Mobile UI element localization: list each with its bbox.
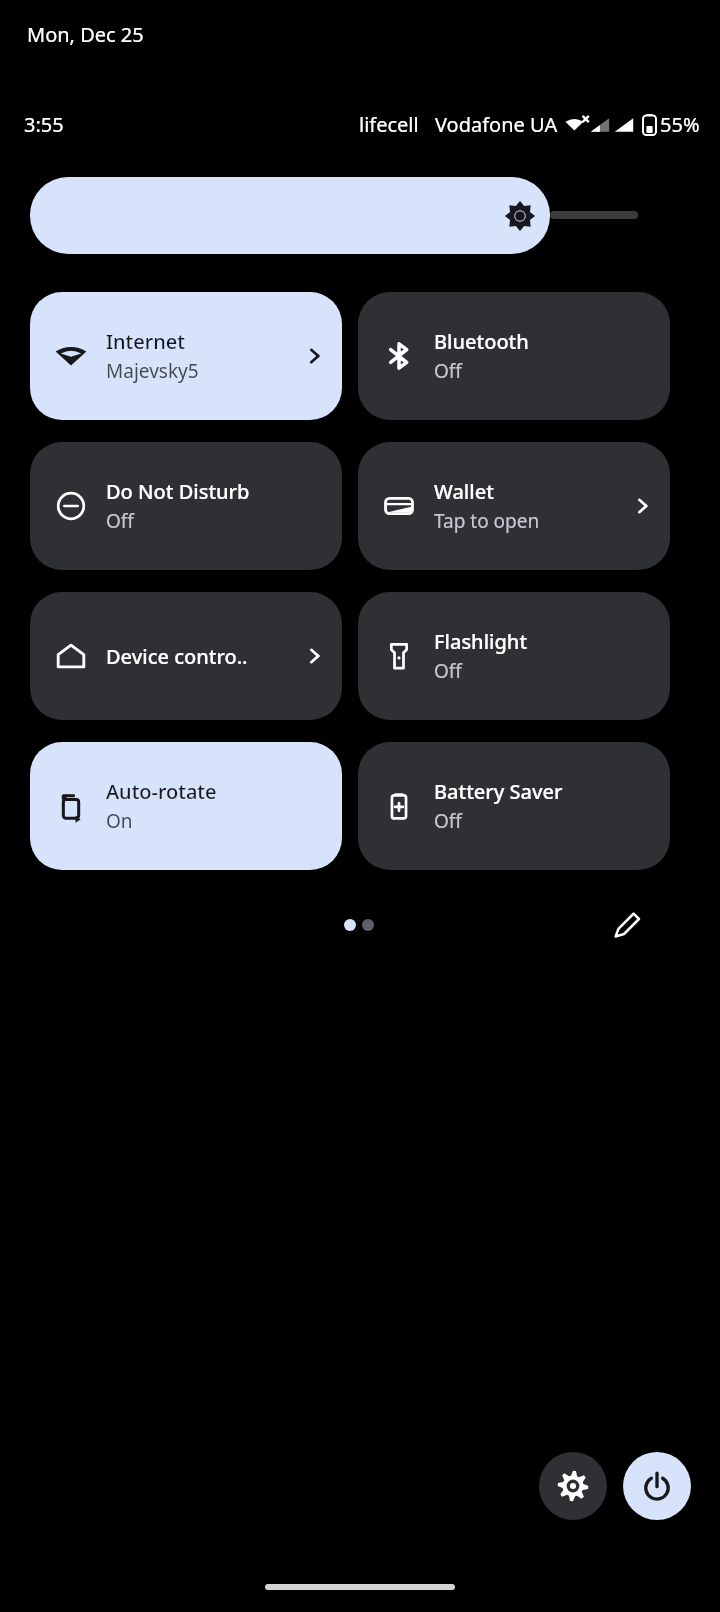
staticText: Off — [106, 508, 134, 534]
staticText: Wallet — [434, 478, 494, 505]
button[interactable]: Edit tiles — [603, 901, 651, 949]
staticText: Off — [434, 358, 462, 384]
staticText: Internet — [106, 328, 185, 355]
staticText: Do Not Disturb — [106, 478, 250, 505]
staticText: Device contro.. — [106, 643, 248, 670]
button[interactable]: Internet — [30, 292, 342, 420]
staticText: Majevsky5 — [106, 358, 199, 384]
staticText: Bluetooth — [434, 328, 529, 355]
button[interactable]: Auto-rotate — [30, 742, 342, 870]
button[interactable]: Device contro.. — [30, 592, 342, 720]
staticText: Flashlight — [434, 628, 528, 655]
button[interactable]: Flashlight — [358, 592, 670, 720]
button[interactable]: Settings — [539, 1452, 607, 1520]
button[interactable]: Battery Saver — [358, 742, 670, 870]
staticText: Vodafone UA — [435, 111, 558, 138]
staticText: Off — [434, 808, 462, 834]
staticText: lifecell — [359, 111, 419, 138]
staticText: Auto-rotate — [106, 778, 217, 805]
staticText: Mon, Dec 25 — [27, 21, 144, 48]
staticText: Tap to open — [434, 508, 540, 534]
staticText: On — [106, 808, 133, 834]
button[interactable]: Brightness — [30, 177, 550, 254]
button[interactable]: Do Not Disturb — [30, 442, 342, 570]
staticText: 55% — [660, 111, 700, 138]
staticText: 3:55 — [24, 111, 64, 138]
staticText: Off — [434, 658, 462, 684]
button[interactable]: Bluetooth — [358, 292, 670, 420]
button[interactable]: Wallet — [358, 442, 670, 570]
button[interactable]: Power — [623, 1452, 691, 1520]
staticText: Battery Saver — [434, 778, 563, 805]
